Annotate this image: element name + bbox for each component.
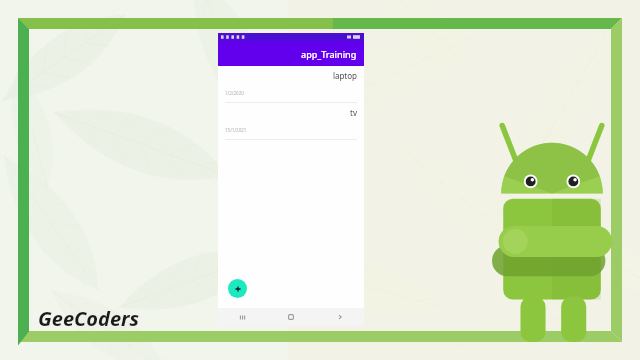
button[interactable]: Recents (218, 308, 266, 326)
staticText: 1/2/2020 (225, 90, 244, 96)
button[interactable]: tv (218, 103, 364, 140)
staticText: laptop (225, 70, 357, 81)
button[interactable]: Add note (228, 279, 247, 298)
staticText: tv (225, 107, 357, 118)
button[interactable]: Home (266, 308, 315, 326)
staticText: 15/1/2021 (225, 127, 247, 133)
button[interactable]: laptop (218, 66, 364, 103)
staticText: GeeCoders (38, 305, 139, 332)
staticText: app_Training (301, 48, 357, 60)
button[interactable]: Back (315, 308, 364, 326)
